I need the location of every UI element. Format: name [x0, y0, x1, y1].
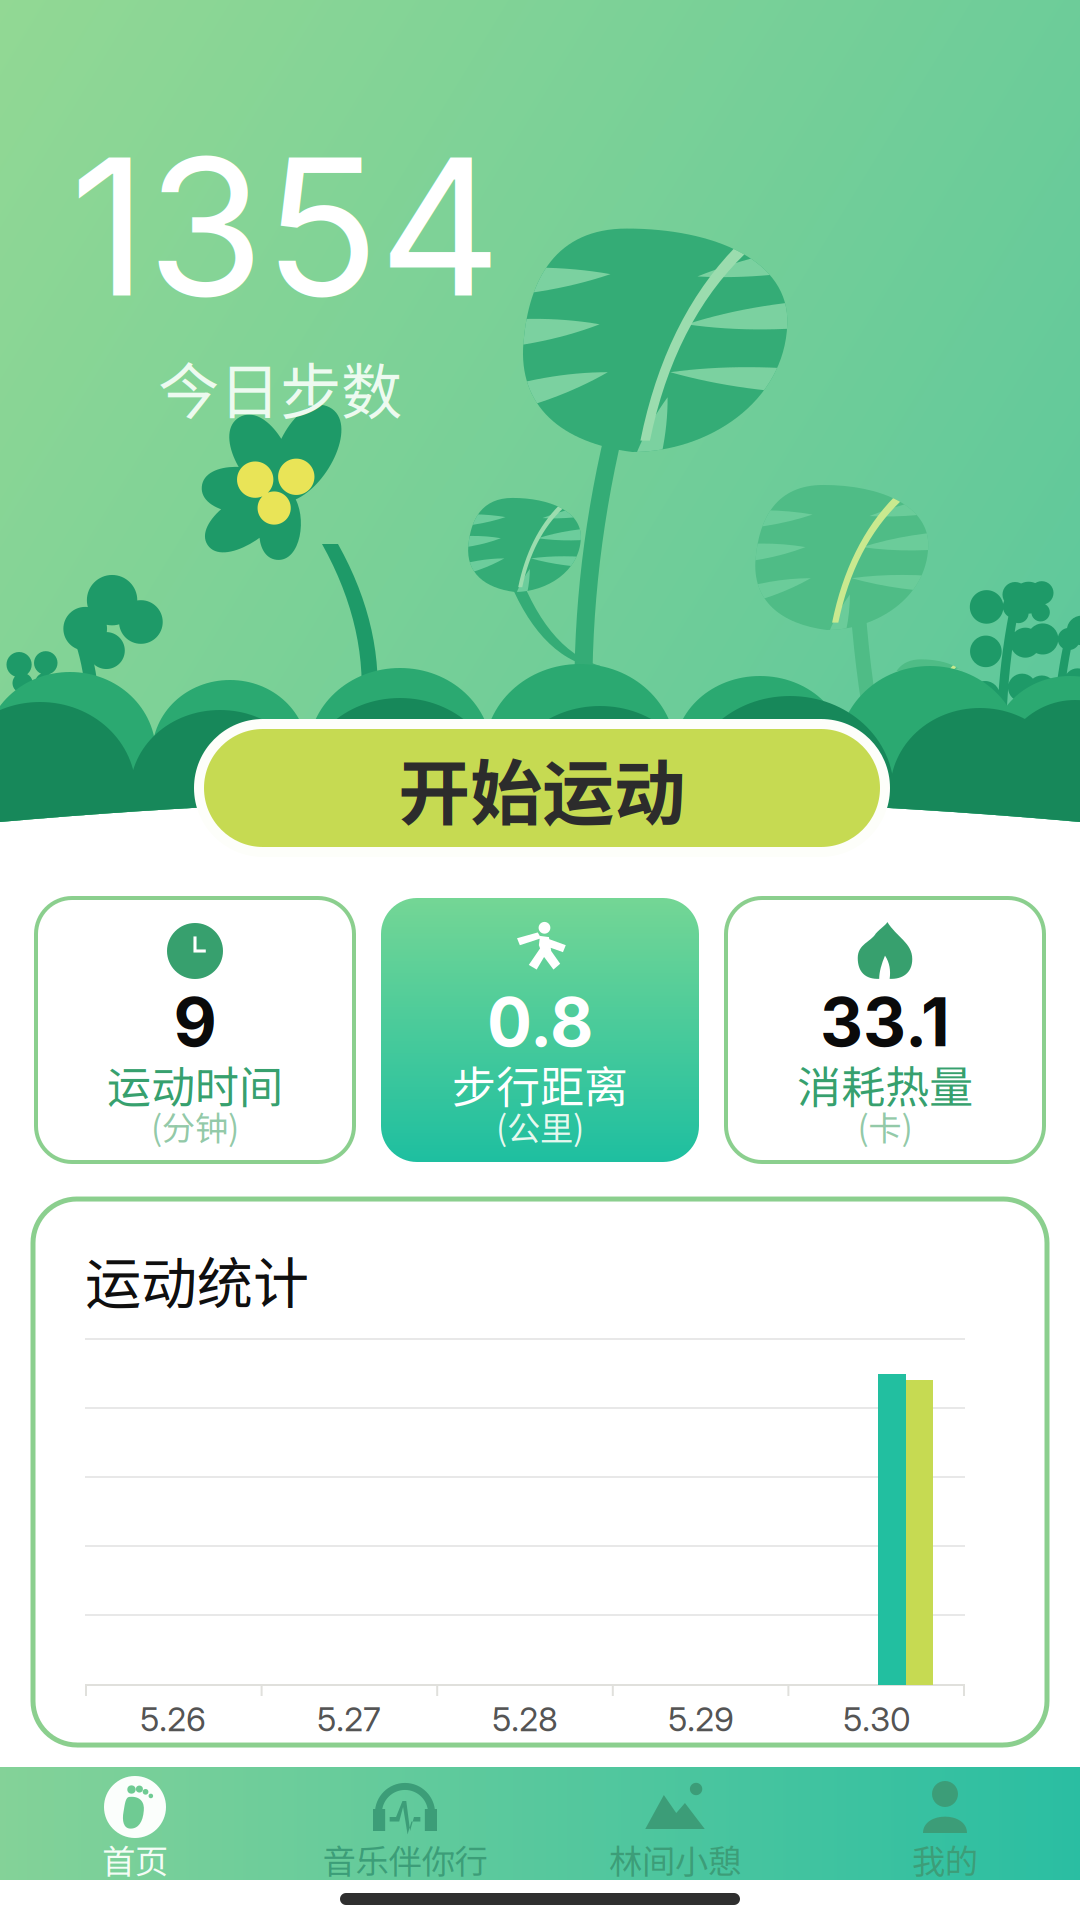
button[interactable]: 0.8 — [381, 898, 699, 1162]
staticText: 运动统计 — [85, 1239, 309, 1320]
staticText: 我的 — [912, 1835, 978, 1883]
button[interactable]: 33.1 — [726, 898, 1044, 1162]
staticText: 消耗热量 — [797, 1052, 973, 1116]
staticText: 开始运动 — [398, 736, 686, 840]
staticText: 运动时间 — [107, 1052, 283, 1116]
staticText: 首页 — [102, 1835, 168, 1883]
staticText: (卡) — [857, 1102, 912, 1150]
staticText: 步行距离 — [452, 1052, 628, 1116]
staticText: 音乐伴你行 — [322, 1835, 487, 1883]
staticText: 林间小憩 — [609, 1835, 741, 1883]
staticText: (公里) — [496, 1102, 584, 1150]
button[interactable]: 9 — [36, 898, 354, 1162]
staticText: 0.8 — [487, 982, 593, 1062]
staticText: 5.28 — [492, 1699, 558, 1739]
button[interactable]: 开始运动 — [199, 724, 885, 852]
button[interactable]: 林间小憩 — [540, 1767, 810, 1880]
staticText: 5.27 — [317, 1699, 381, 1739]
staticText: 33.1 — [820, 982, 950, 1062]
staticText: (分钟) — [151, 1102, 239, 1150]
button[interactable]: 首页 — [0, 1767, 270, 1880]
staticText: 9 — [173, 982, 216, 1062]
staticText: 5.29 — [668, 1699, 734, 1739]
staticText: 5.26 — [140, 1699, 206, 1739]
button[interactable]: 我的 — [810, 1767, 1080, 1880]
staticText: 今日步数 — [158, 343, 402, 432]
button[interactable]: 音乐伴你行 — [270, 1767, 540, 1880]
staticText: 5.30 — [843, 1699, 911, 1739]
staticText: 1354 — [70, 112, 501, 341]
